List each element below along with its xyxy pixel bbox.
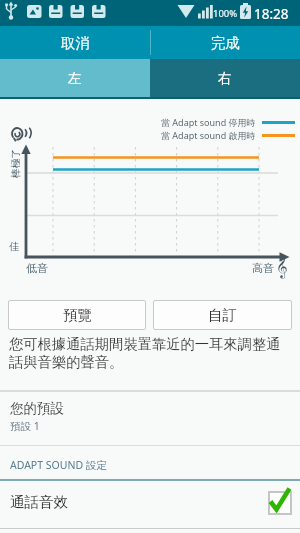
staticText: 預設 1 (10, 419, 40, 433)
button[interactable]: 完成 (150, 26, 300, 59)
staticText: 預覽 (63, 306, 92, 324)
staticText: 通話音效 (10, 493, 68, 511)
staticText: 右 (218, 70, 232, 87)
staticText: 完成 (211, 34, 240, 52)
button[interactable]: 自訂 (153, 300, 292, 330)
staticText: 低音 (26, 261, 48, 275)
staticText: 您的預設 (10, 400, 64, 417)
staticText: 𝄞 (276, 257, 288, 277)
button[interactable]: 取消 (0, 26, 150, 59)
button[interactable]: 預覽 (8, 300, 146, 330)
staticText: 棒極了 (8, 148, 21, 178)
staticText: 100% (213, 7, 238, 20)
staticText: 高音 (252, 261, 274, 275)
staticText: 佳 (9, 240, 19, 253)
staticText: 當 Adapt sound 啟用時 (161, 129, 256, 141)
staticText: 18:28 (254, 5, 289, 23)
staticText: 自訂 (208, 306, 237, 324)
button[interactable]: 左 (0, 59, 150, 97)
staticText: ADAPT SOUND 設定 (10, 458, 107, 472)
button[interactable]: 右 (150, 59, 300, 97)
staticText: 左 (68, 70, 82, 87)
button[interactable] (0, 392, 300, 445)
button[interactable]: 通話音效 (0, 481, 300, 528)
staticText: 取消 (61, 34, 90, 52)
staticText: 當 Adapt sound 停用時 (161, 116, 256, 128)
staticText: 您可根據通話期間裝置靠近的一耳來調整通 話與音樂的聲音。 (9, 335, 281, 371)
